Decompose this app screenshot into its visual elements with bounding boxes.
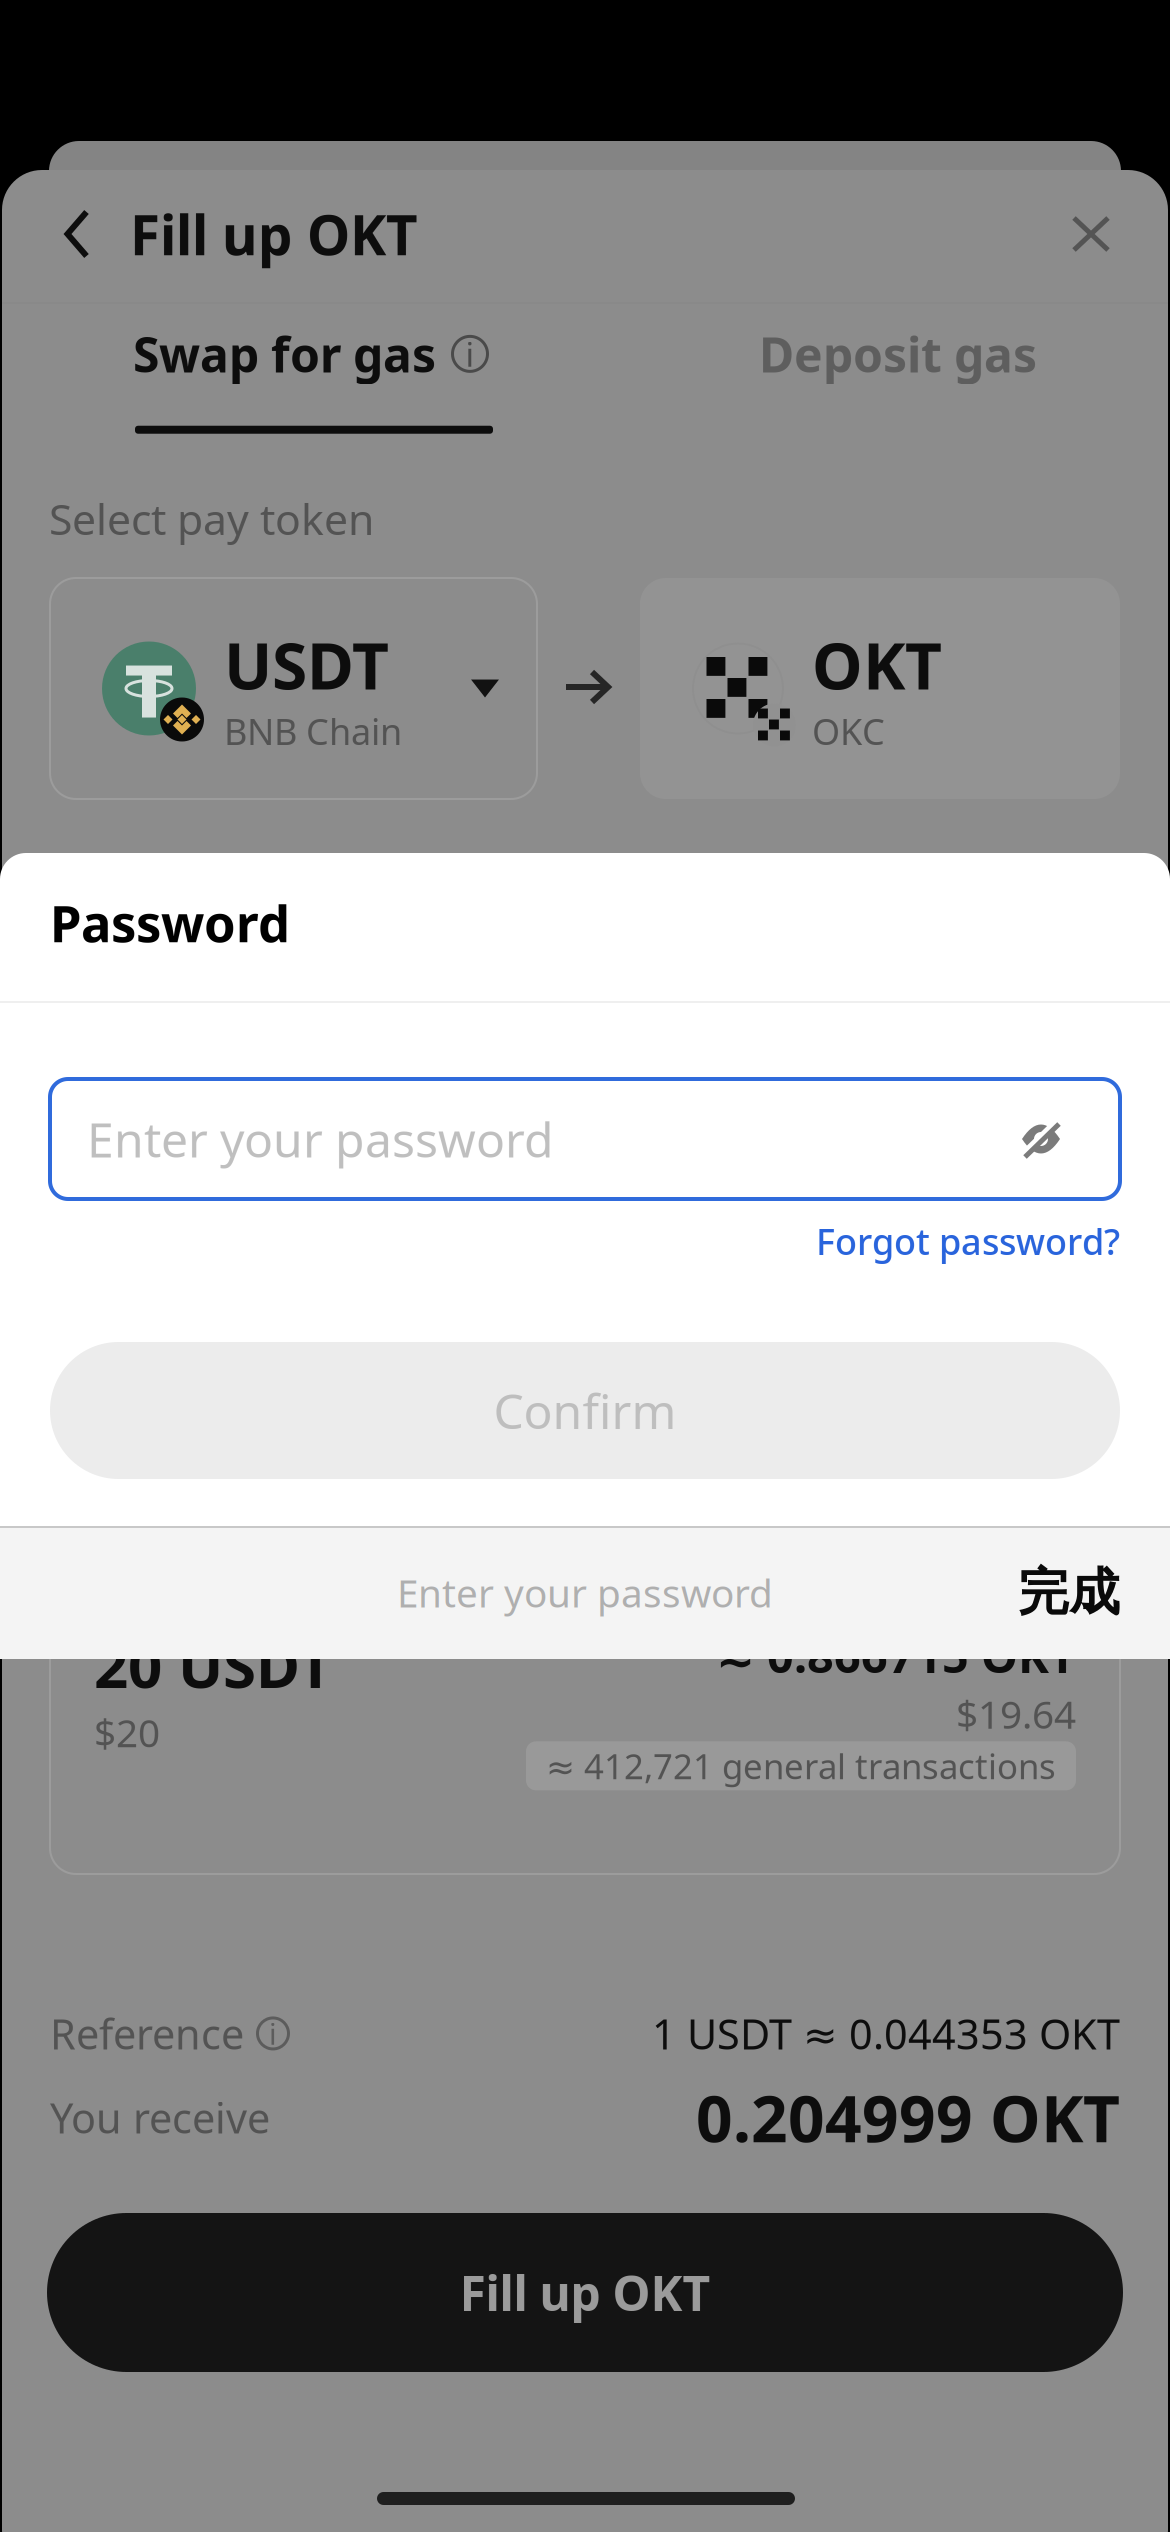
staticText: Reference <box>50 2006 244 2061</box>
staticText: Password <box>50 889 290 956</box>
button[interactable]: 完成 <box>900 1526 1120 1659</box>
staticText: Deposit gas <box>759 322 1037 386</box>
button[interactable]: USDT <box>50 578 537 799</box>
staticText: Fill up OKT <box>459 2261 710 2324</box>
staticText: 完成 <box>1018 1561 1120 1624</box>
button[interactable]: Fill up OKT <box>47 2213 1123 2372</box>
staticText: $19.64 <box>956 1688 1076 1739</box>
button[interactable]: Confirm <box>50 1342 1120 1479</box>
staticText: BNB Chain <box>224 707 402 755</box>
staticText: Swap for gas <box>133 322 436 386</box>
staticText: USDT <box>224 622 389 707</box>
staticText: i <box>465 332 474 376</box>
button[interactable]: Swap for gas <box>133 322 493 434</box>
staticText: Select pay token <box>49 490 374 547</box>
staticText: OKC <box>812 707 885 755</box>
staticText: Forgot password? <box>816 1217 1120 1265</box>
button[interactable]: Back <box>34 162 120 306</box>
staticText: 20 USDT <box>94 1625 333 1705</box>
staticText: You receive <box>50 2090 270 2145</box>
staticText: Confirm <box>493 1379 676 1442</box>
staticText: $20 <box>94 1707 160 1758</box>
staticText: Enter your password <box>397 1567 773 1618</box>
staticText: OKT <box>812 622 942 707</box>
staticText: ≈ 412,721 general transactions <box>546 1743 1056 1789</box>
staticText: 0.204999 OKT <box>696 2075 1120 2160</box>
staticText: Enter your password <box>87 1107 554 1171</box>
button[interactable]: Show password <box>1003 1101 1079 1177</box>
staticText: Fill up OKT <box>130 198 418 270</box>
button[interactable]: Close <box>1036 165 1146 303</box>
staticText: 1 USDT ≈ 0.044353 OKT <box>652 2006 1120 2061</box>
staticText: i <box>269 2014 277 2053</box>
button[interactable]: Forgot password? <box>50 1211 1120 1271</box>
staticText: ≈ 0.866715 OKT <box>716 1624 1076 1686</box>
button[interactable]: Deposit gas <box>759 322 1037 386</box>
